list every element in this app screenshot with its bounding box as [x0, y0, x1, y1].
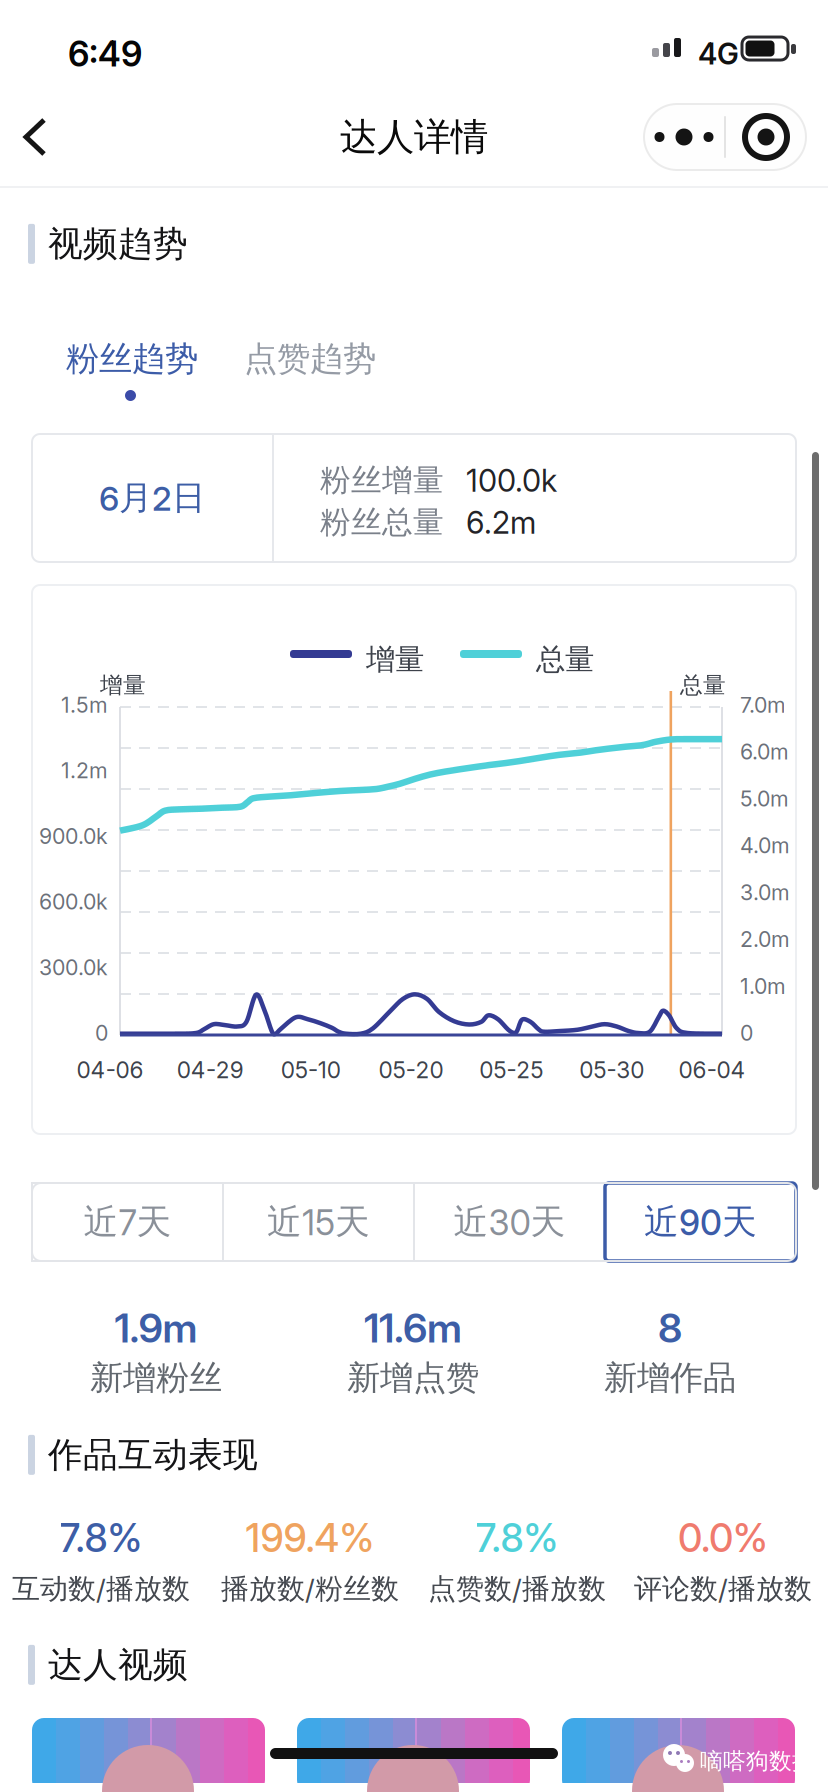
staticText: 达人视频 — [48, 1643, 188, 1687]
button[interactable]: Video thumbnail 1 — [32, 1718, 265, 1792]
staticText: 600.0k — [39, 889, 108, 915]
staticText: 7.0m — [740, 692, 786, 718]
staticText: 6:49 — [68, 33, 142, 75]
staticText: 1.2m — [61, 758, 108, 783]
staticText: 互动数/播放数 — [12, 1571, 190, 1607]
staticText: 点赞数/播放数 — [428, 1571, 606, 1607]
staticText: 05-10 — [281, 1056, 341, 1084]
staticText: 总量 — [680, 671, 726, 700]
button[interactable]: 近15天 — [223, 1183, 414, 1261]
staticText: 点赞趋势 — [244, 338, 376, 380]
staticText: 粉丝趋势 — [66, 338, 198, 380]
staticText: 近7天 — [83, 1200, 171, 1244]
staticText: 04-29 — [177, 1056, 244, 1084]
staticText: 6月2日 — [99, 477, 205, 519]
staticText: 播放数/粉丝数 — [221, 1571, 399, 1607]
staticText: 900.0k — [39, 823, 108, 849]
staticText: 100.0k — [466, 462, 557, 499]
staticText: 3.0m — [740, 879, 790, 905]
staticText: 粉丝增量 — [320, 461, 444, 500]
staticText: 06-04 — [678, 1056, 745, 1084]
staticText: 增量 — [100, 671, 146, 700]
staticText: 11.6m — [364, 1304, 462, 1352]
staticText: 近15天 — [267, 1200, 370, 1244]
staticText: 总量 — [536, 641, 594, 678]
staticText: 7.8% — [59, 1515, 142, 1561]
staticText: 新增作品 — [604, 1357, 736, 1399]
button[interactable]: 粉丝趋势 — [64, 335, 200, 383]
button[interactable]: 点赞趋势 — [242, 335, 378, 383]
staticText: 05-25 — [479, 1056, 543, 1084]
button[interactable]: Video thumbnail 2 — [297, 1718, 530, 1792]
staticText: 近90天 — [644, 1200, 757, 1244]
staticText: 6.0m — [740, 739, 789, 765]
button[interactable]: Video thumbnail 3 — [562, 1718, 795, 1792]
staticText: 增量 — [366, 641, 424, 678]
staticText: 0 — [740, 1020, 753, 1046]
staticText: 7.8% — [475, 1515, 558, 1561]
staticText: 1.0m — [740, 973, 786, 999]
staticText: 视频趋势 — [48, 222, 188, 266]
staticText: 04-06 — [76, 1056, 143, 1084]
staticText: 199.4% — [245, 1515, 374, 1561]
staticText: 05-30 — [579, 1056, 644, 1084]
staticText: 4G — [698, 36, 739, 71]
staticText: 嘀嗒狗数据 — [700, 1747, 815, 1776]
staticText: 8 — [658, 1304, 682, 1352]
staticText: 评论数/播放数 — [634, 1571, 812, 1607]
button[interactable]: More options — [644, 104, 806, 170]
button[interactable]: 近7天 — [32, 1183, 223, 1261]
staticText: 300.0k — [39, 954, 108, 980]
button[interactable]: 近30天 — [414, 1183, 605, 1261]
staticText: 新增点赞 — [347, 1357, 479, 1399]
staticText: 粉丝总量 — [320, 503, 444, 542]
staticText: 05-20 — [378, 1056, 443, 1084]
staticText: 1.5m — [61, 692, 108, 718]
staticText: 新增粉丝 — [90, 1357, 222, 1399]
staticText: 达人详情 — [340, 113, 488, 160]
staticText: 0.0% — [678, 1515, 768, 1561]
staticText: 作品互动表现 — [48, 1433, 258, 1477]
button[interactable]: Back — [12, 101, 98, 173]
staticText: 2.0m — [740, 926, 790, 952]
staticText: 5.0m — [740, 786, 789, 812]
staticText: 6.2m — [466, 504, 536, 541]
staticText: 4.0m — [740, 833, 790, 858]
staticText: 1.9m — [114, 1304, 197, 1352]
staticText: 近30天 — [453, 1200, 565, 1244]
staticText: 0 — [95, 1020, 108, 1046]
button[interactable]: 近90天 — [605, 1183, 796, 1261]
